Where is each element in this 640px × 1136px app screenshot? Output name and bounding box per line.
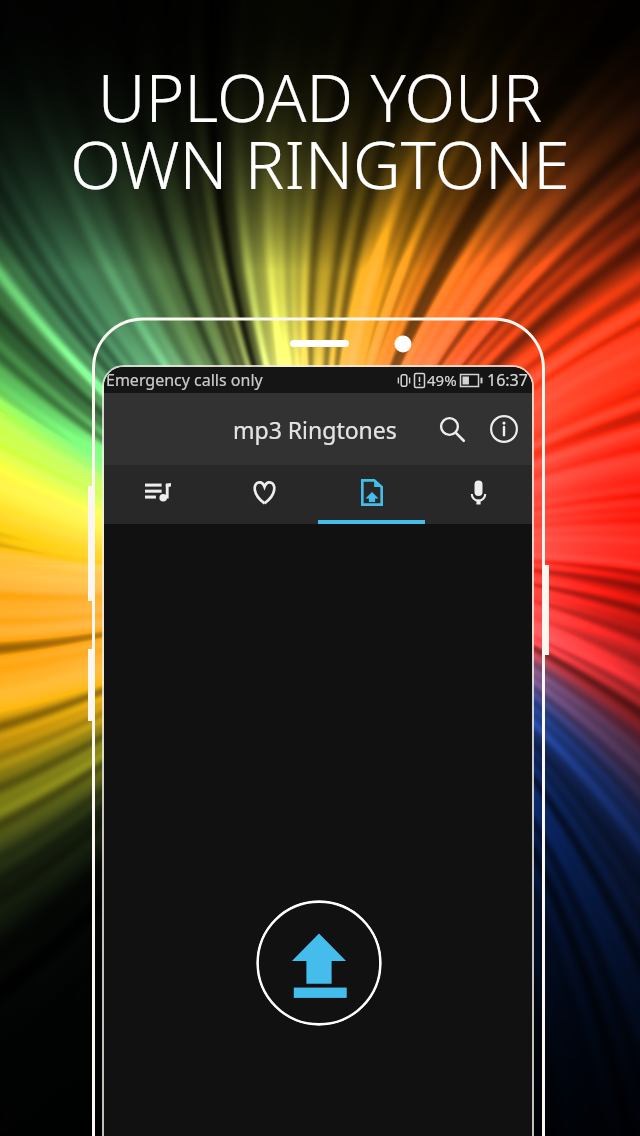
button[interactable]: Record [425,465,532,520]
button[interactable]: Favorites [211,465,318,520]
staticText: Emergency calls only [106,369,263,391]
button[interactable]: Search [426,403,478,455]
staticText: 49% [427,370,457,390]
button[interactable]: Info [478,403,530,455]
button[interactable]: Upload [318,465,425,520]
staticText: 16:37 [487,369,528,391]
button[interactable]: Upload ringtone [256,900,382,1026]
staticText: UPLOAD YOUR OWN RINGTONE [70,51,570,208]
button[interactable]: Playlist [104,465,211,520]
staticText: mp3 Ringtones [233,414,397,445]
